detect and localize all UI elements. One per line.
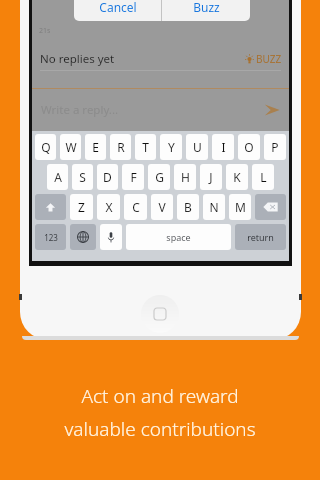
staticText: Z <box>78 199 85 215</box>
staticText: N <box>209 199 219 215</box>
button[interactable]: return <box>235 224 286 250</box>
staticText: Q <box>41 139 51 155</box>
staticText: C <box>132 199 140 215</box>
staticText: return <box>247 231 274 243</box>
button[interactable]: W <box>60 134 81 160</box>
button[interactable]: Q <box>35 134 56 160</box>
staticText: O <box>244 139 254 155</box>
button[interactable]: V <box>151 194 173 220</box>
staticText: space <box>166 231 191 243</box>
button[interactable]: R <box>110 134 131 160</box>
staticText: valuable contributions <box>64 416 256 442</box>
staticText: G <box>155 169 164 185</box>
button[interactable]: Home <box>141 295 179 333</box>
staticText: J <box>209 169 213 185</box>
button[interactable]: I <box>212 134 234 160</box>
button[interactable]: H <box>174 164 196 190</box>
staticText: I <box>221 139 226 155</box>
button[interactable]: Z <box>70 194 93 220</box>
staticText: K <box>233 169 241 185</box>
other: Buzz <box>245 54 254 65</box>
staticText: Write a reply... <box>41 102 119 118</box>
button[interactable]: Write a reply... <box>32 89 289 130</box>
staticText: Buzz <box>193 0 220 15</box>
button[interactable]: No replies yet <box>32 48 289 70</box>
staticText: R <box>117 139 125 155</box>
staticText: No replies yet <box>40 51 115 67</box>
button[interactable]: Shift <box>35 194 66 220</box>
button[interactable]: K <box>226 164 248 190</box>
button[interactable]: Numbers <box>35 224 66 250</box>
staticText: Cancel <box>99 0 137 15</box>
button[interactable]: Emoji <box>70 224 96 250</box>
button[interactable]: M <box>229 194 251 220</box>
staticText: L <box>260 169 267 185</box>
button[interactable]: J <box>200 164 222 190</box>
staticText: W <box>65 139 77 155</box>
staticText: X <box>105 199 113 215</box>
button[interactable]: space <box>126 224 231 250</box>
staticText: F <box>130 169 137 185</box>
button[interactable]: E <box>85 134 106 160</box>
staticText: T <box>142 139 149 155</box>
staticText: A <box>54 169 62 185</box>
staticText: BUZZ <box>256 52 282 66</box>
button[interactable]: T <box>135 134 156 160</box>
button[interactable]: A <box>47 164 68 190</box>
staticText: M <box>235 199 246 215</box>
button[interactable]: N <box>203 194 225 220</box>
staticText: S <box>79 169 86 185</box>
button[interactable]: Dictate <box>100 224 122 250</box>
staticText: Act on and reward <box>81 383 239 409</box>
staticText: B <box>184 199 192 215</box>
button[interactable]: S <box>72 164 93 190</box>
staticText: U <box>193 139 202 155</box>
staticText: 123 <box>44 232 58 243</box>
staticText: H <box>181 169 190 185</box>
button[interactable]: D <box>97 164 118 190</box>
staticText: P <box>271 139 279 155</box>
button[interactable]: B <box>177 194 199 220</box>
button[interactable]: Backspace <box>255 194 286 220</box>
button[interactable]: Y <box>160 134 182 160</box>
button[interactable]: U <box>186 134 208 160</box>
staticText: E <box>92 139 99 155</box>
button[interactable]: Cancel <box>74 0 161 21</box>
other: Send <box>264 104 280 116</box>
button[interactable]: C <box>124 194 147 220</box>
button[interactable]: P <box>264 134 286 160</box>
staticText: D <box>103 169 112 185</box>
staticText: Y <box>168 139 175 155</box>
button[interactable]: O <box>238 134 260 160</box>
button[interactable]: G <box>148 164 170 190</box>
button[interactable]: Buzz <box>162 0 250 21</box>
button[interactable]: X <box>97 194 120 220</box>
staticText: 21s <box>39 26 51 36</box>
staticText: V <box>158 199 166 215</box>
button[interactable]: F <box>122 164 144 190</box>
button[interactable]: L <box>252 164 274 190</box>
